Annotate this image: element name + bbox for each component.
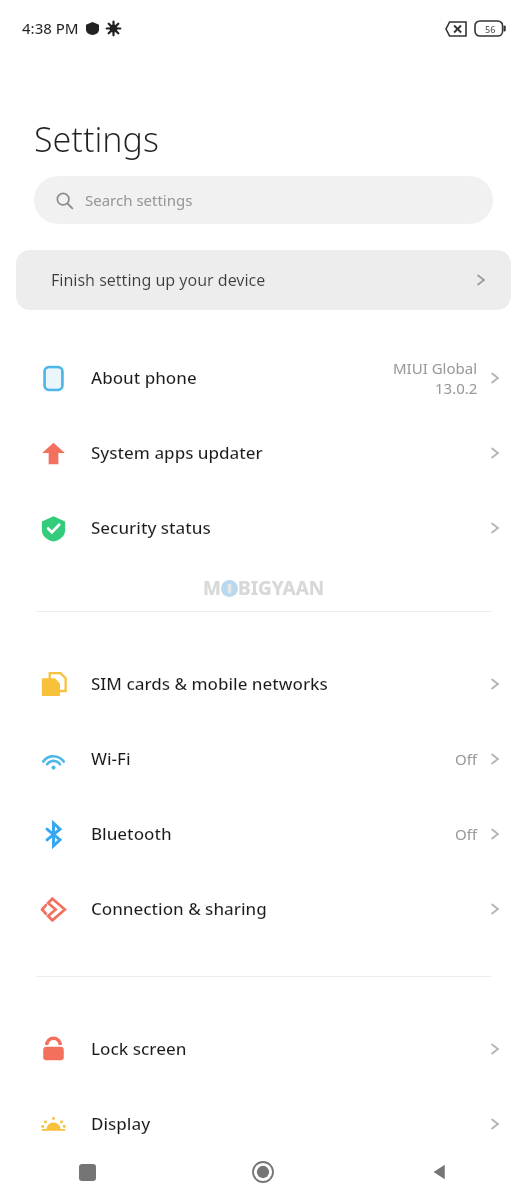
- staticText: SIM cards & mobile networks: [91, 672, 328, 695]
- staticText: BIGYAAN: [238, 575, 325, 601]
- button[interactable]: SIM cards & mobile networks: [0, 646, 527, 721]
- staticText: M: [203, 575, 221, 601]
- staticText: Connection & sharing: [91, 897, 267, 920]
- staticText: About phone: [91, 366, 197, 389]
- staticText: Wi-Fi: [91, 747, 131, 770]
- staticText: 4:38 PM: [22, 18, 79, 38]
- button[interactable]: Display: [0, 1086, 527, 1161]
- button[interactable]: Connection & sharing: [0, 871, 527, 946]
- button[interactable]: Recent apps: [0, 1144, 175, 1200]
- button[interactable]: Wi-Fi: [0, 721, 527, 796]
- staticText: System apps updater: [91, 441, 263, 464]
- staticText: Display: [91, 1112, 151, 1135]
- button[interactable]: Lock screen: [0, 1011, 527, 1086]
- button[interactable]: About phone: [0, 340, 527, 415]
- staticText: Lock screen: [91, 1037, 187, 1060]
- staticText: Off: [455, 824, 478, 844]
- button[interactable]: Security status: [0, 490, 527, 565]
- button[interactable]: System apps updater: [0, 415, 527, 490]
- staticText: Search settings: [85, 190, 193, 210]
- button[interactable]: Finish setting up your device: [16, 250, 511, 310]
- staticText: 56: [485, 23, 496, 35]
- staticText: Bluetooth: [91, 822, 172, 845]
- button[interactable]: Back: [351, 1144, 527, 1200]
- button[interactable]: Home: [175, 1144, 351, 1200]
- staticText: Off: [455, 749, 478, 769]
- staticText: Settings: [34, 116, 159, 162]
- staticText: Security status: [91, 516, 211, 539]
- staticText: Finish setting up your device: [51, 269, 266, 291]
- staticText: 13.0.2: [435, 378, 478, 398]
- staticText: MIUI Global: [393, 358, 478, 378]
- button[interactable]: Search settings: [34, 176, 493, 224]
- button[interactable]: Bluetooth: [0, 796, 527, 871]
